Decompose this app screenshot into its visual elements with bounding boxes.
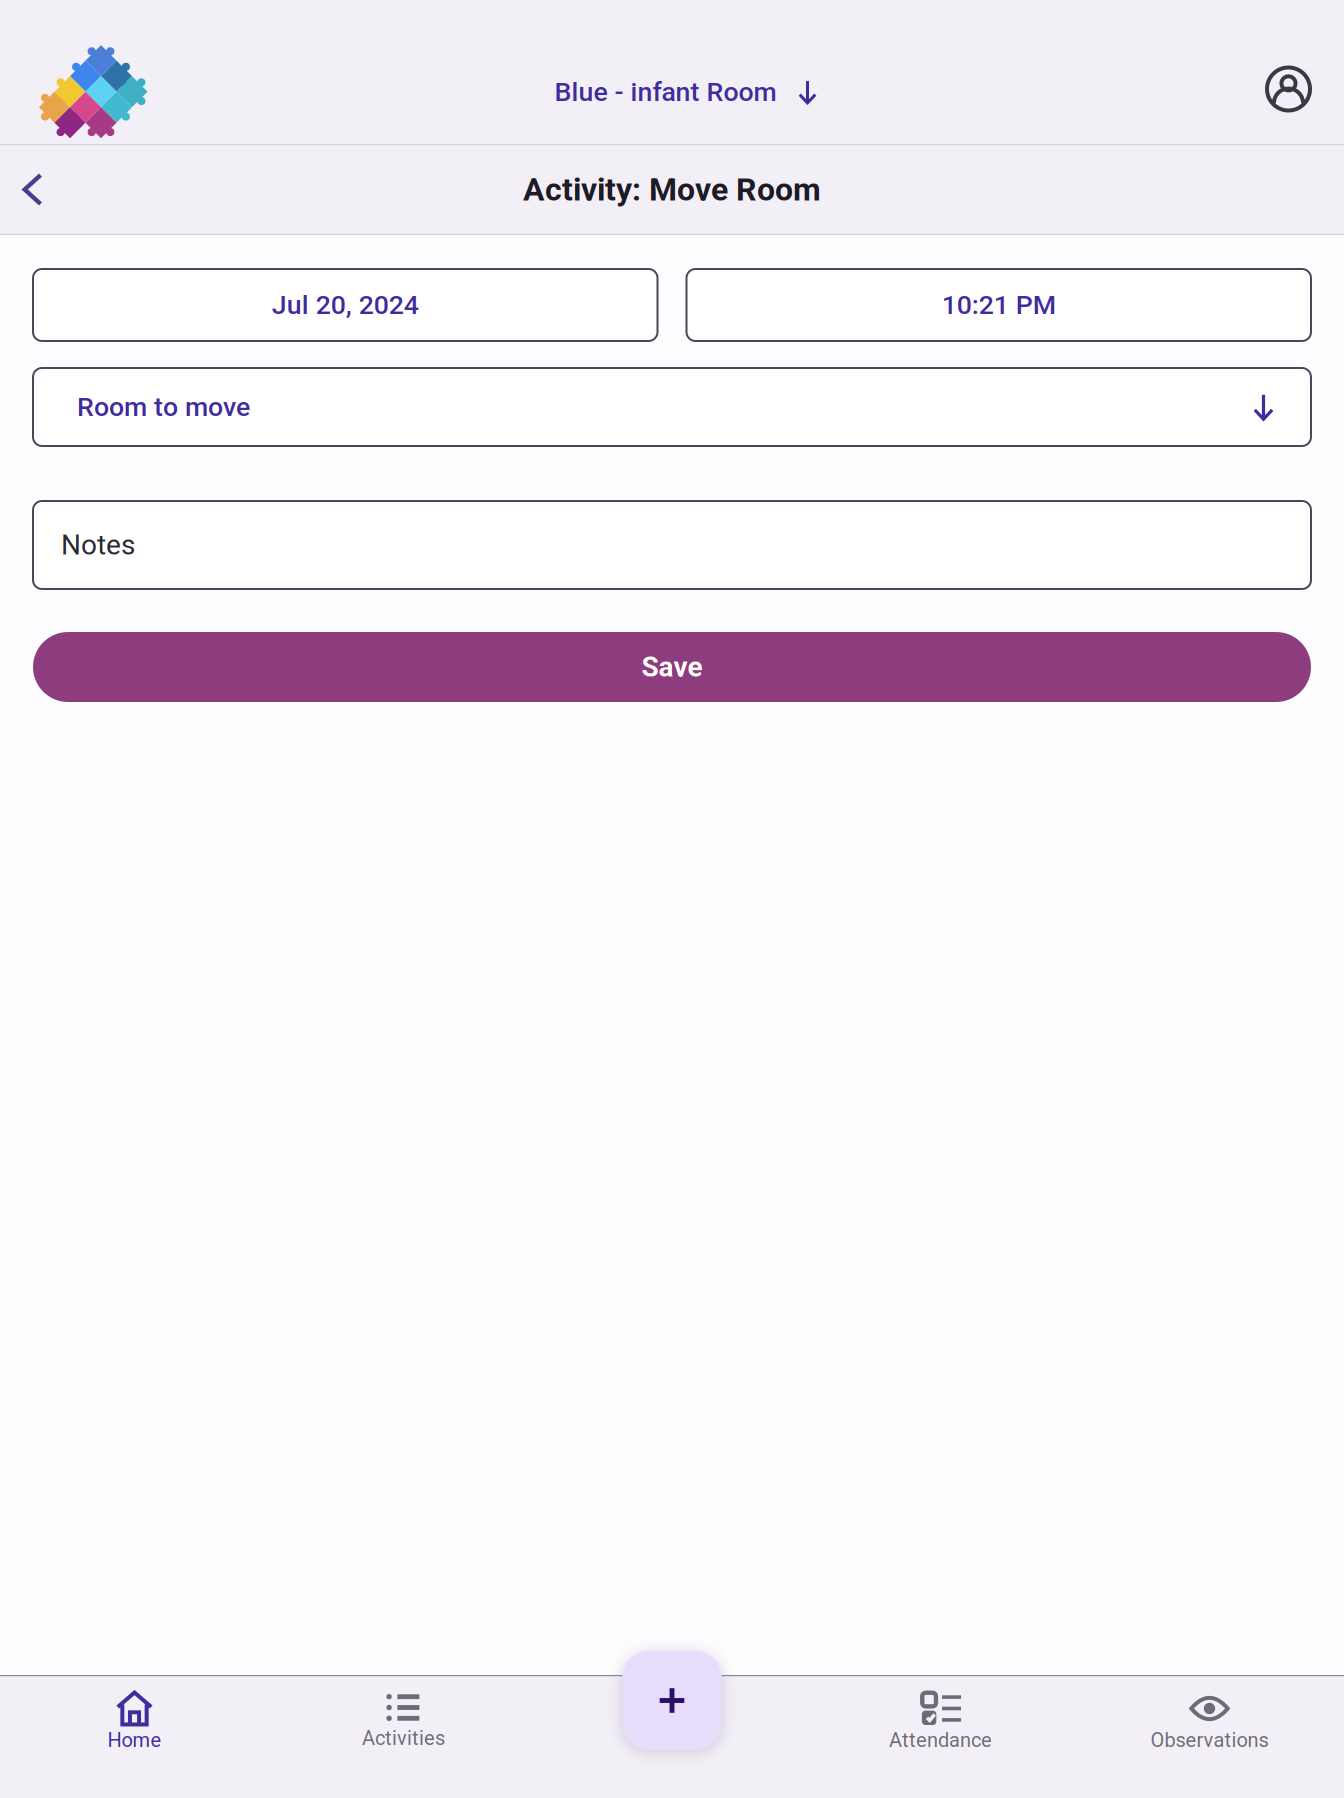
staticText: Jul 20, 2024 bbox=[272, 289, 419, 321]
button[interactable]: Notes bbox=[33, 501, 1311, 589]
button[interactable]: Room to move bbox=[33, 368, 1311, 446]
staticText: Activity: Move Room bbox=[523, 171, 821, 208]
staticText: Attendance bbox=[889, 1728, 992, 1752]
button[interactable]: Home bbox=[0, 27, 162, 117]
button[interactable]: Save bbox=[33, 632, 1311, 702]
staticText: Room to move bbox=[77, 391, 250, 423]
button[interactable]: Home bbox=[0, 1676, 269, 1798]
button[interactable]: Observations bbox=[1075, 1676, 1344, 1798]
button[interactable]: Account bbox=[1249, 48, 1344, 95]
staticText: Home bbox=[107, 1728, 161, 1752]
button[interactable]: Jul 20, 2024 bbox=[33, 269, 657, 341]
staticText: Blue - infant Room bbox=[554, 76, 776, 108]
staticText: Observations bbox=[1150, 1728, 1268, 1752]
button[interactable]: Attendance bbox=[806, 1676, 1075, 1798]
button[interactable]: Back bbox=[0, 159, 52, 219]
staticText: 10:21 PM bbox=[942, 289, 1056, 321]
staticText: Activities bbox=[362, 1726, 445, 1750]
button[interactable]: Blue - infant Room bbox=[572, 46, 838, 98]
button[interactable]: Activities bbox=[269, 1676, 538, 1798]
button[interactable]: Add bbox=[622, 1651, 721, 1750]
button[interactable]: 10:21 PM bbox=[686, 269, 1311, 341]
staticText: Notes bbox=[61, 529, 135, 561]
staticText: Save bbox=[641, 651, 702, 683]
